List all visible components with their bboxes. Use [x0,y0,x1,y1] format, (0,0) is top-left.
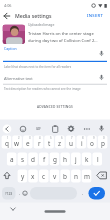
staticText: 4 [39,136,41,140]
staticText: p [101,139,105,148]
staticText: q [5,139,9,148]
staticText: g [53,155,57,164]
button[interactable]: . [80,187,85,199]
staticText: x [31,172,35,181]
button[interactable]: f [39,153,49,166]
staticText: 1 [7,136,9,140]
staticText: 7 [71,136,73,140]
staticText: s [21,155,25,164]
staticText: 2 [18,136,20,140]
button[interactable]: k [82,153,92,166]
staticText: Uploaded image [28,22,55,27]
staticText: y [21,172,25,181]
button[interactable]: INSERT [85,12,106,20]
staticText: , [19,190,21,196]
staticText: INSERT [87,13,104,19]
staticText: i [81,139,83,148]
button[interactable]: g [50,153,60,166]
staticText: w [14,139,20,148]
staticText: f [43,155,46,164]
staticText: d [31,155,35,164]
button[interactable]: r [34,137,44,149]
staticText: c [42,172,46,181]
staticText: j [75,155,77,164]
button[interactable]: u [66,137,76,149]
button[interactable] [2,11,12,21]
staticText: l [97,155,99,164]
staticText: m [84,172,90,181]
button[interactable] [0,72,110,84]
staticText: . [82,190,84,196]
staticText: 9 [93,136,95,140]
button[interactable]: l [93,153,103,166]
button[interactable]: i [77,137,87,149]
staticText: r [38,139,41,148]
staticText: o [90,139,94,148]
staticText: 4:06 [4,3,12,8]
staticText: u [69,139,73,148]
staticText: during day two of Collision Conf 2… [28,38,98,44]
staticText: GIF [36,127,41,131]
staticText: e [26,139,30,148]
staticText: k [85,155,89,164]
staticText: h [63,155,67,164]
staticText: Text description for readers who cannot … [4,87,81,91]
button[interactable]: x [28,170,38,183]
button[interactable]: h [60,153,70,166]
staticText: 8 [82,136,84,140]
button[interactable]: ?123 [2,187,16,200]
button[interactable]: ADVANCED SETTINGS [0,102,110,112]
staticText: n [74,172,78,181]
staticText: ?123 [5,191,13,196]
staticText: Tristan Harris on the center stage [28,31,94,37]
button[interactable]: t [44,137,54,149]
staticText: 3 [29,136,31,140]
button[interactable]: n [71,170,81,183]
staticText: Media settings [15,12,52,19]
button[interactable]: b [60,170,70,183]
staticText: Label that shows next to the item for al… [4,65,72,69]
staticText: Alternative text [4,76,33,81]
button[interactable]: z [55,137,65,149]
button[interactable]: w [12,137,22,149]
button[interactable]: m [82,170,92,183]
button[interactable]: o [87,137,97,149]
button[interactable] [2,124,12,134]
button[interactable]: q [2,137,12,149]
button[interactable]: p [98,137,108,149]
staticText: Caption [4,46,17,51]
staticText: a [10,155,14,164]
button[interactable]: v [50,170,60,183]
button[interactable]: d [28,153,38,166]
staticText: v [53,172,57,181]
button[interactable]: e [23,137,33,149]
staticText: 6 [61,136,63,140]
staticText: t [48,139,51,148]
button[interactable]: s [18,153,28,166]
staticText: b [63,172,67,181]
button[interactable]: , [17,187,22,199]
staticText: 5 [50,136,52,140]
staticText: 0 [103,136,105,140]
button[interactable]: j [71,153,81,166]
button[interactable]: a [7,153,17,166]
button[interactable] [89,187,106,200]
button[interactable]: c [39,170,49,183]
button[interactable]: y [18,170,28,183]
staticText: ADVANCED SETTINGS [37,105,73,109]
button[interactable] [30,187,77,200]
staticText: z [58,139,62,148]
